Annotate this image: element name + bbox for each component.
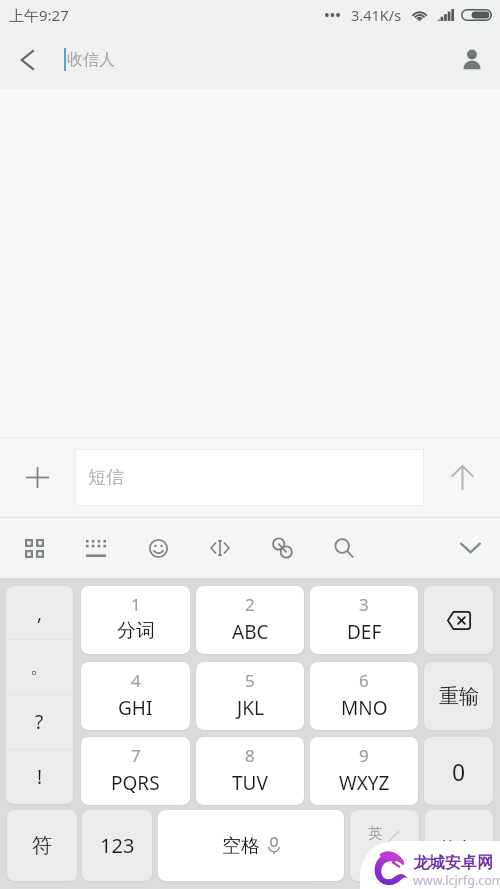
button[interactable]: ,: [6, 586, 73, 639]
staticText: WXYZ: [339, 770, 390, 796]
staticText: !: [37, 764, 43, 790]
staticText: 分词: [117, 619, 155, 643]
button[interactable]: 7 PQRS: [81, 737, 190, 805]
staticText: 上午9:27: [9, 5, 69, 25]
button[interactable]: 4 GHI: [81, 662, 190, 730]
staticText: ,: [37, 600, 43, 626]
button[interactable]: 换行: [425, 810, 493, 881]
staticText: 重输: [439, 684, 479, 709]
staticText: DEF: [347, 619, 382, 645]
staticText: 123: [100, 832, 135, 859]
staticText: 英: [368, 825, 382, 843]
button[interactable]: Move cursor: [196, 518, 244, 578]
staticText: 。: [30, 655, 49, 679]
button[interactable]: 1 分词: [81, 586, 190, 654]
button[interactable]: Clipboard: [258, 518, 306, 578]
button[interactable]: Add attachment: [0, 438, 75, 517]
staticText: MNO: [341, 695, 388, 721]
button[interactable]: 3 DEF: [310, 586, 418, 654]
staticText: GHI: [118, 695, 153, 721]
button[interactable]: 5 JKL: [196, 662, 304, 730]
staticText: 8: [245, 744, 255, 767]
button[interactable]: 英 中: [350, 810, 419, 881]
staticText: www.lcjrfg.com: [413, 872, 500, 889]
staticText: 短信: [88, 466, 124, 489]
button[interactable]: 2 ABC: [196, 586, 304, 654]
button[interactable]: 短信: [75, 449, 424, 506]
staticText: 5: [245, 669, 255, 692]
staticText: ABC: [232, 619, 269, 645]
staticText: TUV: [232, 770, 268, 796]
button[interactable]: Symbols panel: [10, 518, 58, 578]
staticText: 2: [245, 593, 255, 616]
button[interactable]: 重输: [424, 662, 493, 730]
staticText: 空格: [222, 834, 260, 858]
staticText: 符: [32, 833, 52, 858]
button[interactable]: 9 WXYZ: [310, 737, 418, 805]
button[interactable]: Search: [320, 518, 368, 578]
staticText: 1: [131, 593, 141, 616]
button[interactable]: 。: [6, 640, 73, 694]
button[interactable]: Backspace: [424, 586, 493, 654]
button[interactable]: !: [6, 750, 73, 804]
button[interactable]: Choose contact: [444, 30, 500, 89]
staticText: 4: [131, 669, 141, 692]
button[interactable]: 收信人: [64, 30, 115, 89]
staticText: JKL: [237, 695, 264, 721]
staticText: 7: [131, 744, 141, 767]
button[interactable]: Keyboard: [72, 518, 120, 578]
staticText: ?: [35, 709, 44, 735]
staticText: 换行: [440, 837, 478, 861]
button[interactable]: 空格: [158, 810, 344, 881]
button[interactable]: Hide keyboard: [446, 518, 494, 578]
staticText: 3.41K/s: [351, 5, 402, 25]
staticText: PQRS: [111, 770, 160, 796]
staticText: 0: [452, 756, 466, 787]
button[interactable]: 8 TUV: [196, 737, 304, 805]
button[interactable]: Send message: [424, 438, 500, 517]
button[interactable]: Back: [0, 30, 54, 89]
staticText: 6: [359, 669, 369, 692]
button[interactable]: Emoji: [134, 518, 182, 578]
staticText: 9: [359, 744, 369, 767]
staticText: 龙城安卓网: [413, 853, 493, 873]
button[interactable]: 123: [82, 810, 152, 881]
button[interactable]: 0: [424, 737, 493, 805]
button[interactable]: 6 MNO: [310, 662, 418, 730]
button[interactable]: ?: [6, 695, 73, 749]
staticText: 中: [393, 848, 409, 868]
staticText: 3: [359, 593, 369, 616]
button[interactable]: Punctuation: [6, 586, 73, 804]
button[interactable]: 符: [7, 810, 77, 881]
staticText: 收信人: [67, 50, 115, 70]
